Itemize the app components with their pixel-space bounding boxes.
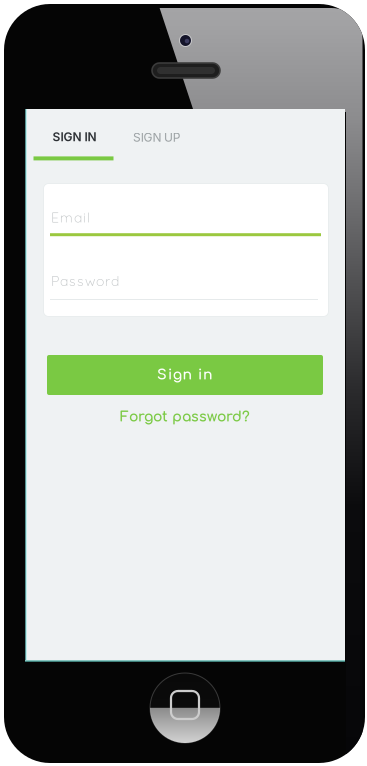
staticText: SIGN UP xyxy=(133,130,181,144)
button[interactable]: SIGN IN xyxy=(25,109,121,169)
staticText: SIGN IN xyxy=(52,129,96,144)
staticText: Password xyxy=(51,272,119,289)
staticText: Forgot password? xyxy=(120,409,250,425)
button[interactable]: Forgot password? xyxy=(85,405,285,429)
button[interactable]: Sign in xyxy=(47,355,323,395)
staticText: Sign in xyxy=(157,367,213,383)
button[interactable]: SIGN UP xyxy=(121,109,201,169)
staticText: Email xyxy=(51,208,90,226)
